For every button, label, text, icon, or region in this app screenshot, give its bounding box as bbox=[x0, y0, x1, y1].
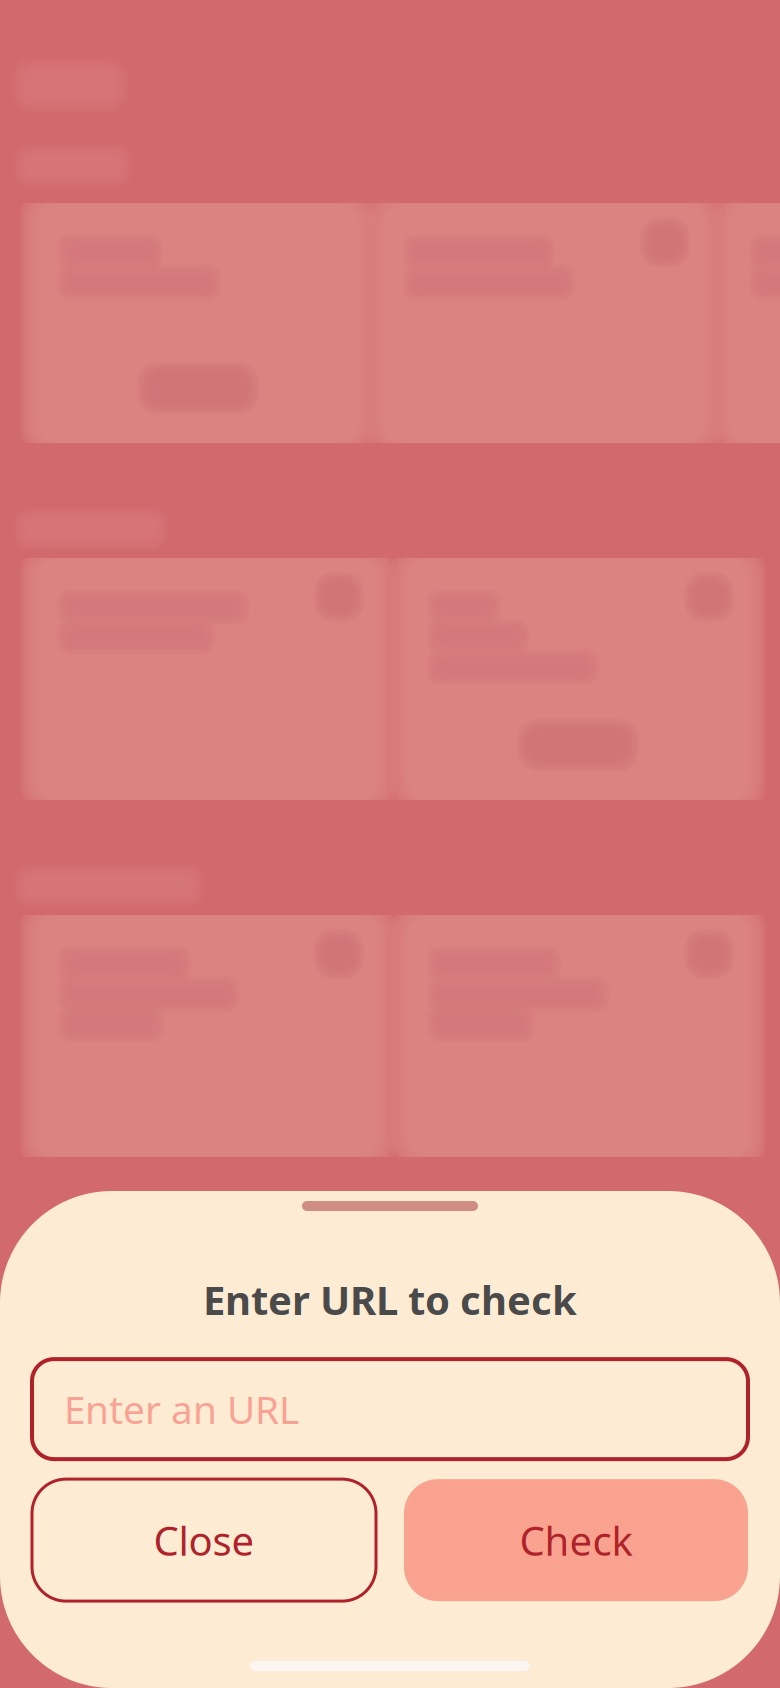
staticText: Enter an URL bbox=[64, 1383, 299, 1435]
staticText: Close bbox=[153, 1514, 254, 1567]
button[interactable]: Enter an URL bbox=[32, 1359, 748, 1459]
staticText: Check bbox=[519, 1514, 632, 1567]
button[interactable]: Check bbox=[404, 1479, 748, 1601]
button[interactable]: Close bbox=[32, 1479, 376, 1601]
staticText: Enter URL to check bbox=[203, 1273, 577, 1326]
